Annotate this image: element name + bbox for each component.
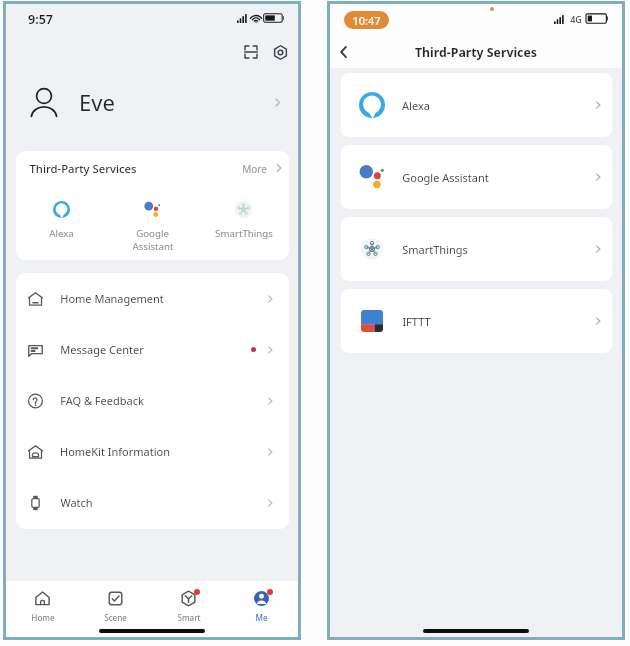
button[interactable]: Home Management bbox=[16, 273, 289, 324]
button[interactable]: FAQ & Feedback bbox=[16, 375, 289, 426]
staticText: Scene bbox=[104, 612, 127, 623]
button[interactable]: Google Assistant bbox=[341, 145, 612, 209]
staticText: 9:57 bbox=[28, 11, 53, 28]
staticText: SmartThings bbox=[215, 227, 273, 240]
staticText: Assistant bbox=[132, 240, 174, 253]
button[interactable]: Scan QR code bbox=[238, 39, 264, 65]
button[interactable]: SmartThings bbox=[198, 201, 289, 240]
staticText: Alexa bbox=[49, 227, 74, 240]
staticText: Third-Party Services bbox=[415, 44, 537, 61]
staticText: More bbox=[242, 162, 267, 176]
button[interactable]: Watch bbox=[16, 477, 289, 528]
staticText: Third-Party Services bbox=[29, 161, 137, 176]
button[interactable]: Back bbox=[331, 39, 357, 65]
button[interactable]: Home bbox=[6, 590, 79, 623]
button[interactable]: IFTTT bbox=[341, 289, 612, 353]
staticText: SmartThings bbox=[402, 242, 468, 257]
button[interactable]: Alexa bbox=[341, 73, 612, 137]
staticText: Home Management bbox=[60, 291, 164, 306]
button[interactable]: Eve bbox=[6, 76, 298, 128]
button[interactable]: Scene bbox=[79, 590, 152, 623]
button[interactable]: Smart bbox=[152, 590, 225, 623]
staticText: Google Assistant bbox=[402, 170, 489, 185]
staticText: Google bbox=[136, 227, 169, 240]
staticText: IFTTT bbox=[402, 314, 431, 329]
staticText: Smart bbox=[177, 612, 201, 623]
staticText: Me bbox=[255, 612, 268, 623]
staticText: HomeKit Information bbox=[60, 444, 170, 459]
staticText: Watch bbox=[60, 495, 93, 510]
button[interactable]: Alexa bbox=[16, 201, 107, 240]
staticText: Home bbox=[31, 612, 55, 623]
button[interactable]: More bbox=[242, 158, 285, 178]
button[interactable]: Google bbox=[107, 201, 198, 253]
staticText: Message Center bbox=[60, 342, 144, 357]
staticText: Alexa bbox=[402, 98, 430, 113]
staticText: FAQ & Feedback bbox=[60, 393, 144, 408]
staticText: 10:47 bbox=[352, 13, 381, 28]
staticText: Eve bbox=[79, 87, 115, 117]
staticText: 4G bbox=[570, 13, 582, 24]
button[interactable]: Me bbox=[225, 590, 298, 623]
button[interactable]: HomeKit Information bbox=[16, 426, 289, 477]
button[interactable]: Message Center bbox=[16, 324, 289, 375]
button[interactable]: Settings bbox=[267, 39, 293, 65]
button[interactable]: SmartThings bbox=[341, 217, 612, 281]
